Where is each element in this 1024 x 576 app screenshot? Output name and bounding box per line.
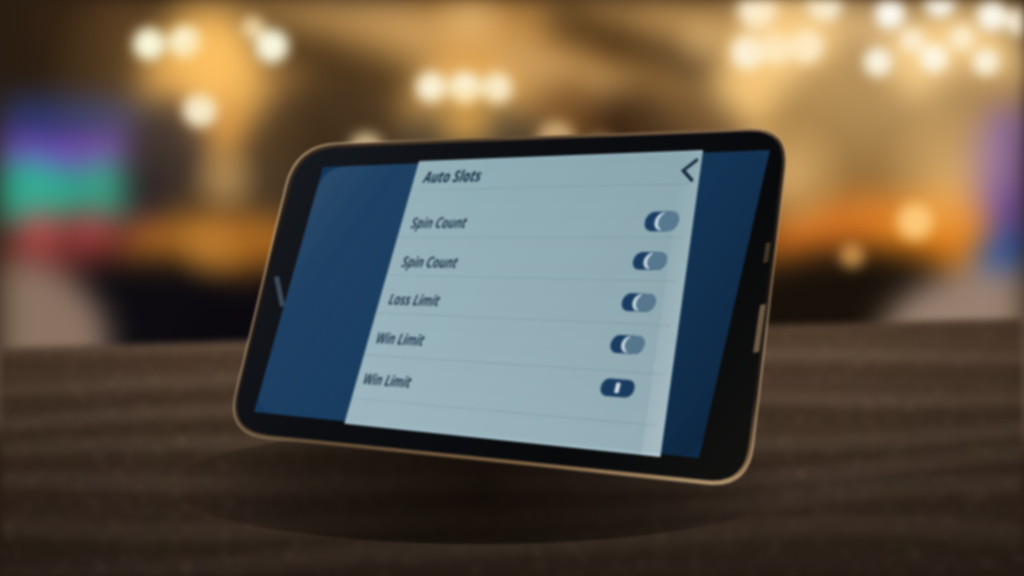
- button[interactable]: Loss Limit: [378, 276, 678, 316]
- button[interactable]: Spin Count: [390, 238, 690, 278]
- button[interactable]: Win Limit toggle: [602, 375, 636, 399]
- button[interactable]: Win Limit: [366, 316, 666, 356]
- button[interactable]: Win Limit: [352, 358, 652, 398]
- button[interactable]: [390, 152, 660, 194]
- button[interactable]: Spin Count: [398, 196, 698, 236]
- button[interactable]: Loss Limit toggle: [623, 290, 657, 314]
- button[interactable]: Spin Count toggle: [645, 209, 679, 233]
- button[interactable]: Spin Count toggle: [634, 249, 668, 273]
- button[interactable]: Back: [660, 150, 712, 194]
- button[interactable]: Win Limit toggle: [612, 332, 646, 356]
